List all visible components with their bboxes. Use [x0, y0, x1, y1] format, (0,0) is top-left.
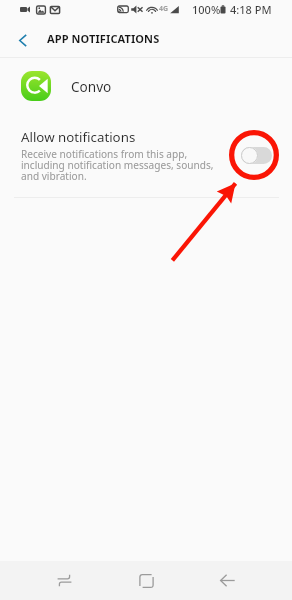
staticText: Convo: [71, 77, 112, 96]
staticText: 4G: [159, 4, 169, 14]
staticText: 4:18 PM: [230, 2, 272, 17]
button[interactable]: Back: [212, 561, 242, 600]
staticText: Receive notifications from this app, inc…: [21, 147, 214, 183]
button[interactable]: Allow notifications switch, off: [241, 147, 272, 164]
staticText: Allow notifications: [21, 128, 136, 146]
button[interactable]: Convo: [0, 58, 292, 112]
staticText: 100%: [192, 2, 221, 17]
button[interactable]: Recent apps: [49, 561, 79, 600]
staticText: APP NOTIFICATIONS: [47, 31, 160, 46]
button[interactable]: Home: [131, 561, 161, 600]
button[interactable]: Navigate up: [10, 27, 36, 53]
